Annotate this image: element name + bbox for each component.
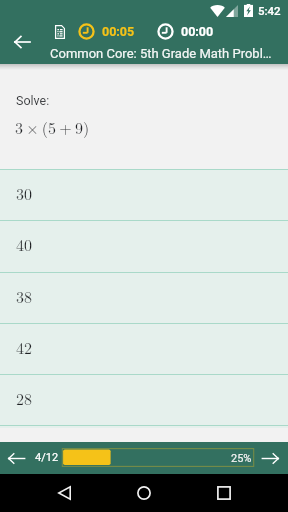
staticText: 40 [16,233,33,256]
staticText: 25% [231,452,252,465]
button[interactable]: 30 [0,170,288,220]
staticText: 42 [16,336,33,359]
button[interactable]: Recent apps [200,474,248,512]
staticText: Solve: [16,93,50,108]
staticText: Common Core: 5th Grade Math Probl… [50,46,288,61]
button[interactable]: 40 [0,221,288,272]
staticText: 28 [16,387,33,410]
staticText: 4/12 [35,451,59,464]
button[interactable]: Next question [252,442,288,474]
button[interactable]: 28 [0,375,288,425]
button[interactable]: Home [120,474,168,512]
button[interactable]: 42 [0,324,288,374]
staticText: 38 [16,285,33,308]
button[interactable]: Back [4,24,40,60]
staticText: 30 [16,182,33,205]
staticText: 00:05 [102,24,135,39]
staticText: 00:00 [181,24,214,39]
staticText: 5:42 [258,4,281,17]
button[interactable]: 38 [0,273,288,323]
staticText: 3 × (5 + 9) [15,116,90,139]
button[interactable]: Previous question [0,442,32,474]
button[interactable]: Back [40,474,88,512]
